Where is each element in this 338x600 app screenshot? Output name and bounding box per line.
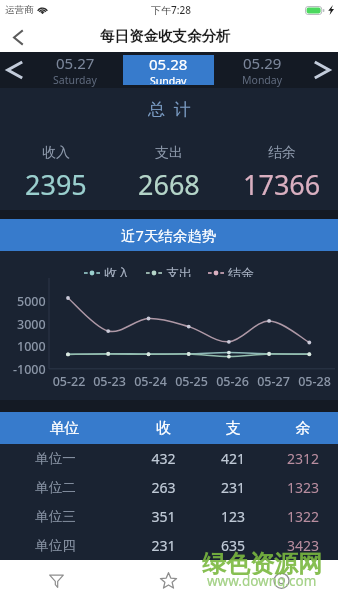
button[interactable]: Favorite — [112, 560, 225, 600]
staticText: 432 — [129, 449, 198, 468]
staticText: 05-23 — [89, 373, 130, 390]
staticText: 1323 — [268, 478, 338, 497]
staticText: Monday — [242, 73, 283, 87]
staticText: 05.28 — [149, 54, 188, 74]
staticText: 2668 — [138, 166, 200, 203]
staticText: 05-22 — [49, 373, 89, 390]
staticText: 收入 — [42, 144, 70, 162]
staticText: 351 — [129, 507, 198, 526]
staticText: 2312 — [268, 449, 338, 468]
staticText: 支 — [198, 419, 268, 438]
staticText: 结余 — [268, 144, 296, 162]
staticText: 05-28 — [294, 373, 335, 390]
staticText: 收入 — [104, 265, 130, 281]
staticText: 5000 — [17, 293, 46, 309]
button[interactable]: 05.29 — [217, 52, 308, 88]
staticText: www.downg.com — [207, 572, 317, 588]
button[interactable]: Previous day — [0, 52, 30, 88]
button[interactable]: 05.28 — [123, 55, 214, 85]
staticText: Sunday — [150, 74, 187, 84]
staticText: 绿色资源网 — [202, 549, 322, 575]
button[interactable]: 单位二 — [0, 473, 338, 502]
staticText: 支出 — [155, 144, 183, 162]
staticText: Saturday — [53, 73, 97, 87]
staticText: 支出 — [166, 265, 192, 281]
staticText: 单位一 — [0, 450, 111, 467]
staticText: 单位 — [0, 419, 129, 438]
staticText: 1322 — [268, 507, 338, 526]
button[interactable]: 单位四 — [0, 531, 338, 560]
button[interactable]: 单位三 — [0, 502, 338, 531]
staticText: 单位二 — [0, 479, 111, 496]
staticText: 05-26 — [212, 373, 253, 390]
staticText: 231 — [198, 478, 268, 497]
staticText: 单位三 — [0, 508, 111, 525]
staticText: 下午7:28 — [151, 3, 191, 17]
staticText: 2395 — [25, 166, 87, 203]
staticText: -1000 — [13, 361, 46, 377]
button[interactable]: 近7天结余趋势 — [0, 219, 338, 251]
button[interactable]: Next day — [306, 52, 338, 88]
button[interactable]: Back — [0, 22, 36, 52]
staticText: 每日资金收支余分析 — [100, 27, 231, 45]
staticText: 运营商 — [5, 4, 34, 16]
staticText: 05.27 — [56, 53, 95, 73]
staticText: 3423 — [268, 536, 338, 555]
staticText: 231 — [129, 536, 198, 555]
button[interactable]: 05.27 — [29, 52, 120, 88]
staticText: 05-24 — [130, 373, 171, 390]
staticText: 1000 — [17, 338, 46, 354]
staticText: 收 — [129, 419, 198, 438]
staticText: 总 计 — [148, 97, 191, 119]
staticText: 3000 — [17, 316, 46, 332]
staticText: 421 — [198, 449, 268, 468]
staticText: 05-27 — [253, 373, 294, 390]
staticText: 近7天结余趋势 — [121, 225, 217, 245]
button[interactable]: Filter — [0, 560, 112, 600]
staticText: 05-25 — [171, 373, 212, 390]
staticText: 263 — [129, 478, 198, 497]
button[interactable]: Account — [225, 560, 338, 600]
staticText: 123 — [198, 507, 268, 526]
staticText: 05.29 — [243, 53, 282, 73]
staticText: 单位四 — [0, 537, 111, 554]
staticText: 结余 — [228, 265, 254, 281]
staticText: 635 — [198, 536, 268, 555]
staticText: 17366 — [243, 166, 321, 203]
staticText: 余 — [268, 419, 338, 438]
button[interactable]: 单位一 — [0, 444, 338, 473]
